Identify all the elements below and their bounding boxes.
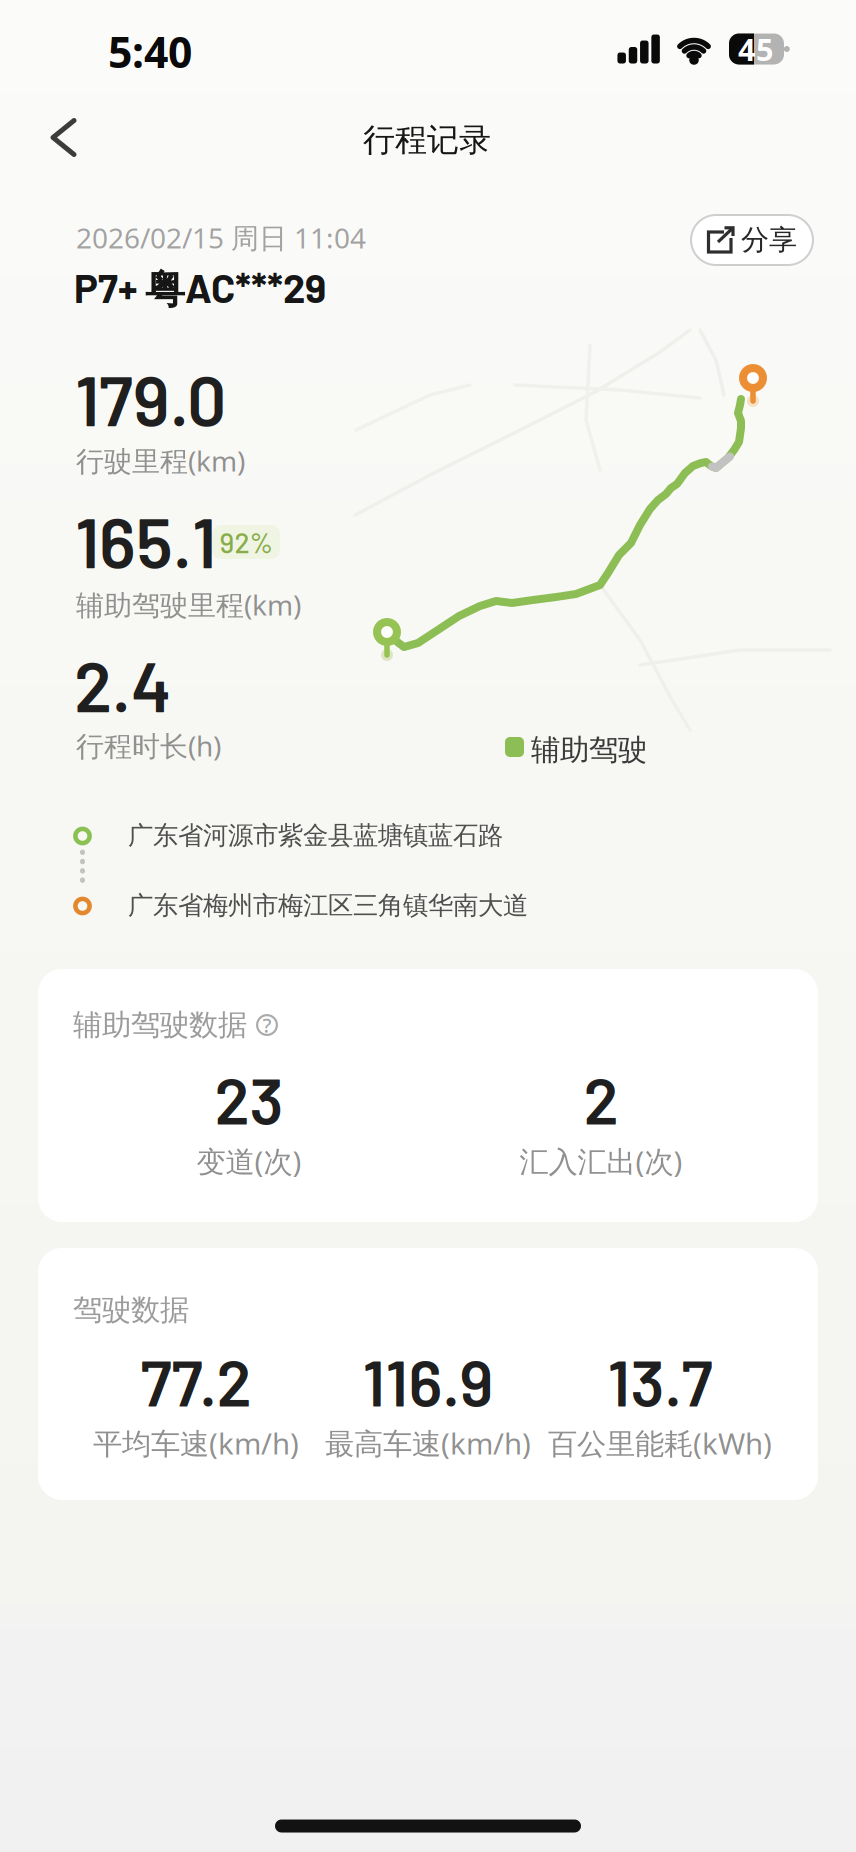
staticText: 2 (583, 1061, 618, 1137)
staticText: 23 (214, 1061, 283, 1137)
button[interactable]: Back (32, 110, 96, 165)
staticText: 变道(次) (196, 1141, 301, 1180)
staticText: 行程时长(h) (76, 727, 221, 764)
staticText: 平均车速(km/h) (93, 1423, 299, 1462)
staticText: 辅助驾驶 (531, 732, 647, 768)
staticText: 辅助驾驶数据 (73, 1007, 247, 1043)
button[interactable]: Help (256, 1014, 278, 1036)
staticText: 45 (738, 29, 774, 69)
staticText: 13.7 (607, 1343, 712, 1419)
staticText: ? (262, 1012, 271, 1038)
button[interactable]: 分享 (690, 214, 814, 266)
staticText: 汇入汇出(次) (519, 1141, 682, 1180)
staticText: 5:40 (108, 23, 192, 80)
staticText: 最高车速(km/h) (325, 1423, 531, 1462)
staticText: 165.1 (75, 499, 216, 582)
staticText: 广东省河源市紫金县蓝塘镇蓝石路 (128, 820, 503, 851)
staticText: P7+ 粤AC***29 (74, 263, 326, 315)
staticText: 行驶里程(km) (76, 442, 245, 479)
staticText: 77.2 (140, 1343, 251, 1419)
staticText: 179.0 (75, 357, 226, 440)
staticText: 行程记录 (363, 120, 491, 160)
staticText: 辅助驾驶里程(km) (76, 586, 301, 623)
staticText: 116.9 (362, 1343, 493, 1419)
staticText: 广东省梅州市梅江区三角镇华南大道 (128, 890, 528, 921)
staticText: 百公里能耗(kWh) (548, 1423, 772, 1462)
staticText: 驾驶数据 (73, 1292, 189, 1328)
staticText: 2.4 (74, 643, 172, 726)
staticText: 2026/02/15 周日 11:04 (76, 219, 366, 256)
staticText: 分享 (741, 223, 797, 257)
staticText: 92% (219, 525, 272, 559)
